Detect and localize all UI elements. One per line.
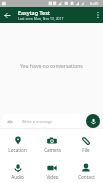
button[interactable]: Contact [69,155,103,183]
staticText: Audio [11,174,24,180]
staticText: Camera [44,147,61,153]
button[interactable]: Record voice message [86,114,100,128]
button[interactable]: Audio [0,155,35,183]
staticText: Location [8,147,27,153]
staticText: You have no conversations [20,63,83,70]
button[interactable]: More options [93,7,103,23]
staticText: 6:45 [90,1,99,7]
staticText: File [82,147,90,153]
button[interactable]: Video [35,155,69,183]
button[interactable]: Camera [35,128,69,155]
button[interactable]: File [69,128,103,155]
staticText: Contact [78,174,95,180]
staticText: Easytag Test [18,9,50,16]
staticText: Last seen Mon, Nov 13, 2017 [18,16,64,21]
staticText: Video [46,174,59,180]
staticText: Write a message [22,119,53,124]
button[interactable]: Back [0,7,14,23]
button[interactable]: Write a message [2,114,80,128]
button[interactable]: Location [0,128,35,155]
